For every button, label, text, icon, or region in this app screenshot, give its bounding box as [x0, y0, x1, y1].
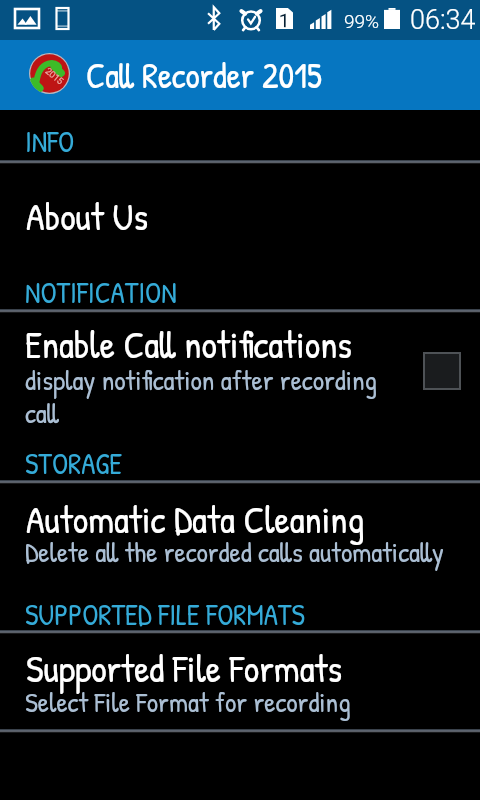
- button[interactable]: Automatic Data Cleaning: [0, 483, 480, 585]
- staticText: Call Recorder 2015: [86, 52, 322, 99]
- staticText: 2015: [43, 66, 65, 87]
- button[interactable]: Enable Call notifications: [0, 312, 480, 434]
- staticText: Select File Format for recording: [25, 683, 351, 721]
- staticText: STORAGE: [25, 444, 123, 483]
- staticText: 06:34: [410, 4, 476, 36]
- button[interactable]: About Us: [0, 162, 480, 262]
- button[interactable]: Enable Call notifications checkbox: [423, 352, 461, 390]
- staticText: 1: [279, 9, 290, 30]
- staticText: SUPPORTED FILE FORMATS: [25, 595, 305, 634]
- staticText: About Us: [26, 190, 149, 241]
- staticText: Delete all the recorded calls automatica…: [25, 533, 444, 571]
- staticText: NOTIFICATION: [25, 273, 177, 312]
- staticText: Supported File Formats: [26, 642, 343, 693]
- staticText: 99%: [344, 10, 380, 32]
- staticText: Enable Call notifications: [25, 318, 352, 369]
- other: App icon: [29, 53, 70, 94]
- staticText: display notification after recording cal…: [25, 361, 385, 431]
- button[interactable]: Supported File Formats: [0, 633, 480, 729]
- staticText: Automatic Data Cleaning: [26, 493, 365, 544]
- staticText: INFO: [25, 122, 75, 161]
